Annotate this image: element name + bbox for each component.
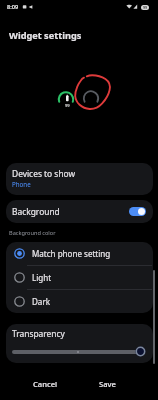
staticText: 99 (65, 103, 70, 109)
button[interactable]: Match phone setting (6, 242, 153, 265)
button[interactable]: Light (6, 265, 153, 289)
button[interactable]: Dark (6, 289, 153, 313)
staticText: Dark (32, 296, 51, 307)
staticText: Match phone setting (32, 248, 111, 259)
staticText: 8:09 (7, 3, 19, 11)
button[interactable]: Cancel (25, 375, 65, 393)
button[interactable]: Save (90, 375, 124, 393)
staticText: Phone (12, 180, 31, 188)
staticText: Light (32, 272, 52, 283)
button[interactable]: Devices to show (6, 163, 153, 195)
button[interactable]: Transparency (6, 324, 153, 363)
staticText: Transparency (12, 328, 65, 339)
staticText: Widget settings (9, 29, 82, 42)
staticText: Cancel (33, 379, 58, 389)
staticText: Background color (9, 229, 56, 237)
staticText: 99 (143, 5, 148, 10)
staticText: Background (12, 206, 60, 217)
button[interactable]: Background (6, 200, 153, 223)
staticText: Save (99, 379, 116, 389)
staticText: Devices to show (12, 168, 76, 179)
